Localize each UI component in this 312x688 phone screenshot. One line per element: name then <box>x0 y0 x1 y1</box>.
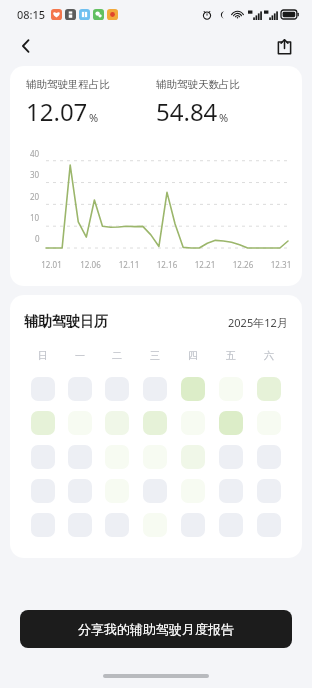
staticText: 五 <box>226 349 236 362</box>
staticText: 辅助驾驶日历 <box>24 313 108 331</box>
button[interactable] <box>31 513 55 537</box>
button[interactable] <box>219 411 243 435</box>
button[interactable]: Back <box>8 28 44 64</box>
staticText: 12.26 <box>224 259 262 270</box>
staticText: 12.16 <box>148 259 186 270</box>
button[interactable] <box>257 411 281 435</box>
staticText: 40 <box>30 148 40 159</box>
button[interactable] <box>143 411 167 435</box>
button[interactable]: 分享我的辅助驾驶月度报告 <box>20 610 292 648</box>
button[interactable] <box>181 377 205 401</box>
staticText: 12.01 <box>32 259 71 270</box>
staticText: 日 <box>38 349 48 362</box>
staticText: 12.11 <box>110 259 148 270</box>
staticText: 12.31 <box>262 259 300 270</box>
button[interactable] <box>257 513 281 537</box>
button[interactable] <box>181 411 205 435</box>
staticText: 六 <box>264 349 274 362</box>
button[interactable] <box>68 445 92 469</box>
button[interactable] <box>219 445 243 469</box>
button[interactable] <box>31 479 55 503</box>
button[interactable] <box>105 479 129 503</box>
button[interactable] <box>105 411 129 435</box>
staticText: 0 <box>35 233 40 244</box>
button[interactable] <box>219 377 243 401</box>
button[interactable] <box>257 479 281 503</box>
staticText: 四 <box>188 349 198 362</box>
button[interactable] <box>68 411 92 435</box>
button[interactable] <box>181 479 205 503</box>
staticText: 12.21 <box>186 259 224 270</box>
button[interactable] <box>31 411 55 435</box>
staticText: 54.84 <box>156 95 218 128</box>
staticText: 三 <box>150 349 160 362</box>
button[interactable] <box>257 445 281 469</box>
button[interactable] <box>31 377 55 401</box>
button[interactable] <box>105 377 129 401</box>
button[interactable] <box>68 513 92 537</box>
button[interactable]: Share <box>266 28 302 64</box>
staticText: 辅助驾驶天数占比 <box>156 78 240 91</box>
button[interactable] <box>219 513 243 537</box>
button[interactable] <box>143 445 167 469</box>
staticText: 辅助驾驶里程占比 <box>26 78 110 91</box>
button[interactable] <box>181 513 205 537</box>
staticText: 12.06 <box>71 259 110 270</box>
button[interactable] <box>143 479 167 503</box>
staticText: 12.07 <box>26 95 88 128</box>
staticText: 分享我的辅助驾驶月度报告 <box>78 621 234 637</box>
button[interactable] <box>219 479 243 503</box>
button[interactable] <box>31 445 55 469</box>
staticText: 二 <box>112 349 122 362</box>
button[interactable] <box>143 377 167 401</box>
staticText: 08:15 <box>17 7 46 22</box>
staticText: 2025年12月 <box>228 315 288 330</box>
button[interactable] <box>257 377 281 401</box>
button[interactable] <box>143 513 167 537</box>
button[interactable] <box>105 445 129 469</box>
button[interactable] <box>105 513 129 537</box>
staticText: % <box>219 110 229 125</box>
staticText: 10 <box>30 212 40 223</box>
button[interactable] <box>181 445 205 469</box>
button[interactable] <box>68 479 92 503</box>
staticText: 20 <box>30 191 40 202</box>
staticText: 一 <box>75 349 85 362</box>
staticText: 30 <box>30 169 40 180</box>
staticText: % <box>89 110 99 125</box>
button[interactable] <box>68 377 92 401</box>
